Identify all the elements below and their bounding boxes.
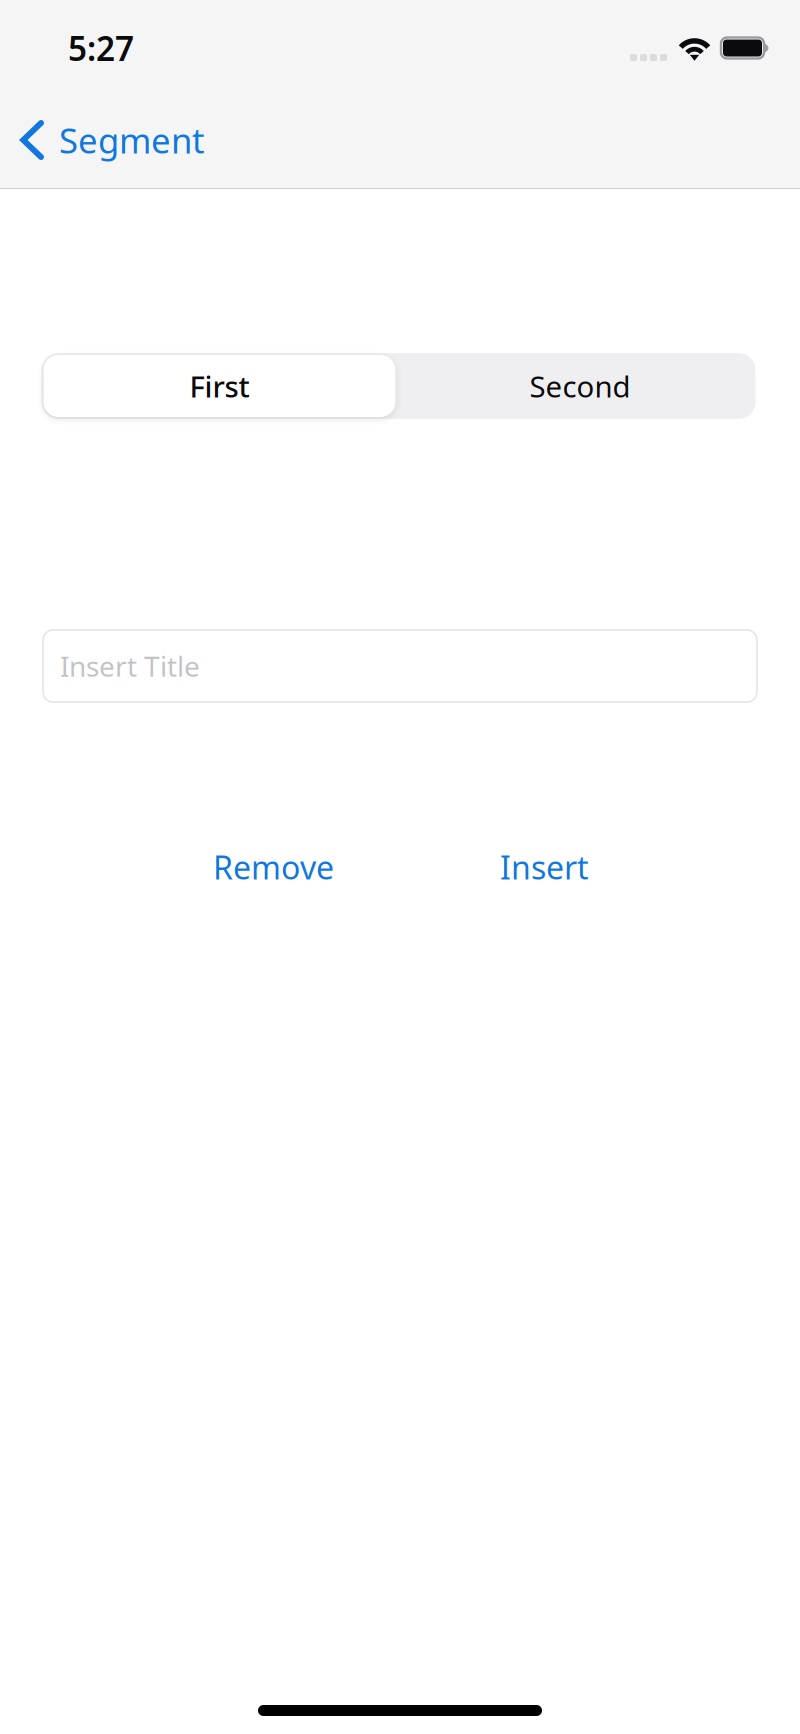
staticText: Insert Title — [60, 647, 200, 685]
staticText: First — [189, 366, 249, 405]
staticText: Segment — [59, 117, 205, 163]
button[interactable]: Second — [401, 355, 758, 417]
staticText: Second — [529, 366, 630, 405]
button[interactable]: Remove — [183, 843, 363, 891]
button[interactable]: First — [43, 355, 395, 417]
button[interactable]: Insert — [454, 843, 634, 891]
staticText: Remove — [213, 846, 334, 888]
staticText: 5:27 — [68, 26, 134, 70]
button[interactable]: Back to Segment — [0, 92, 219, 188]
staticText: Insert — [500, 846, 589, 888]
button[interactable]: Insert Title — [43, 630, 757, 702]
